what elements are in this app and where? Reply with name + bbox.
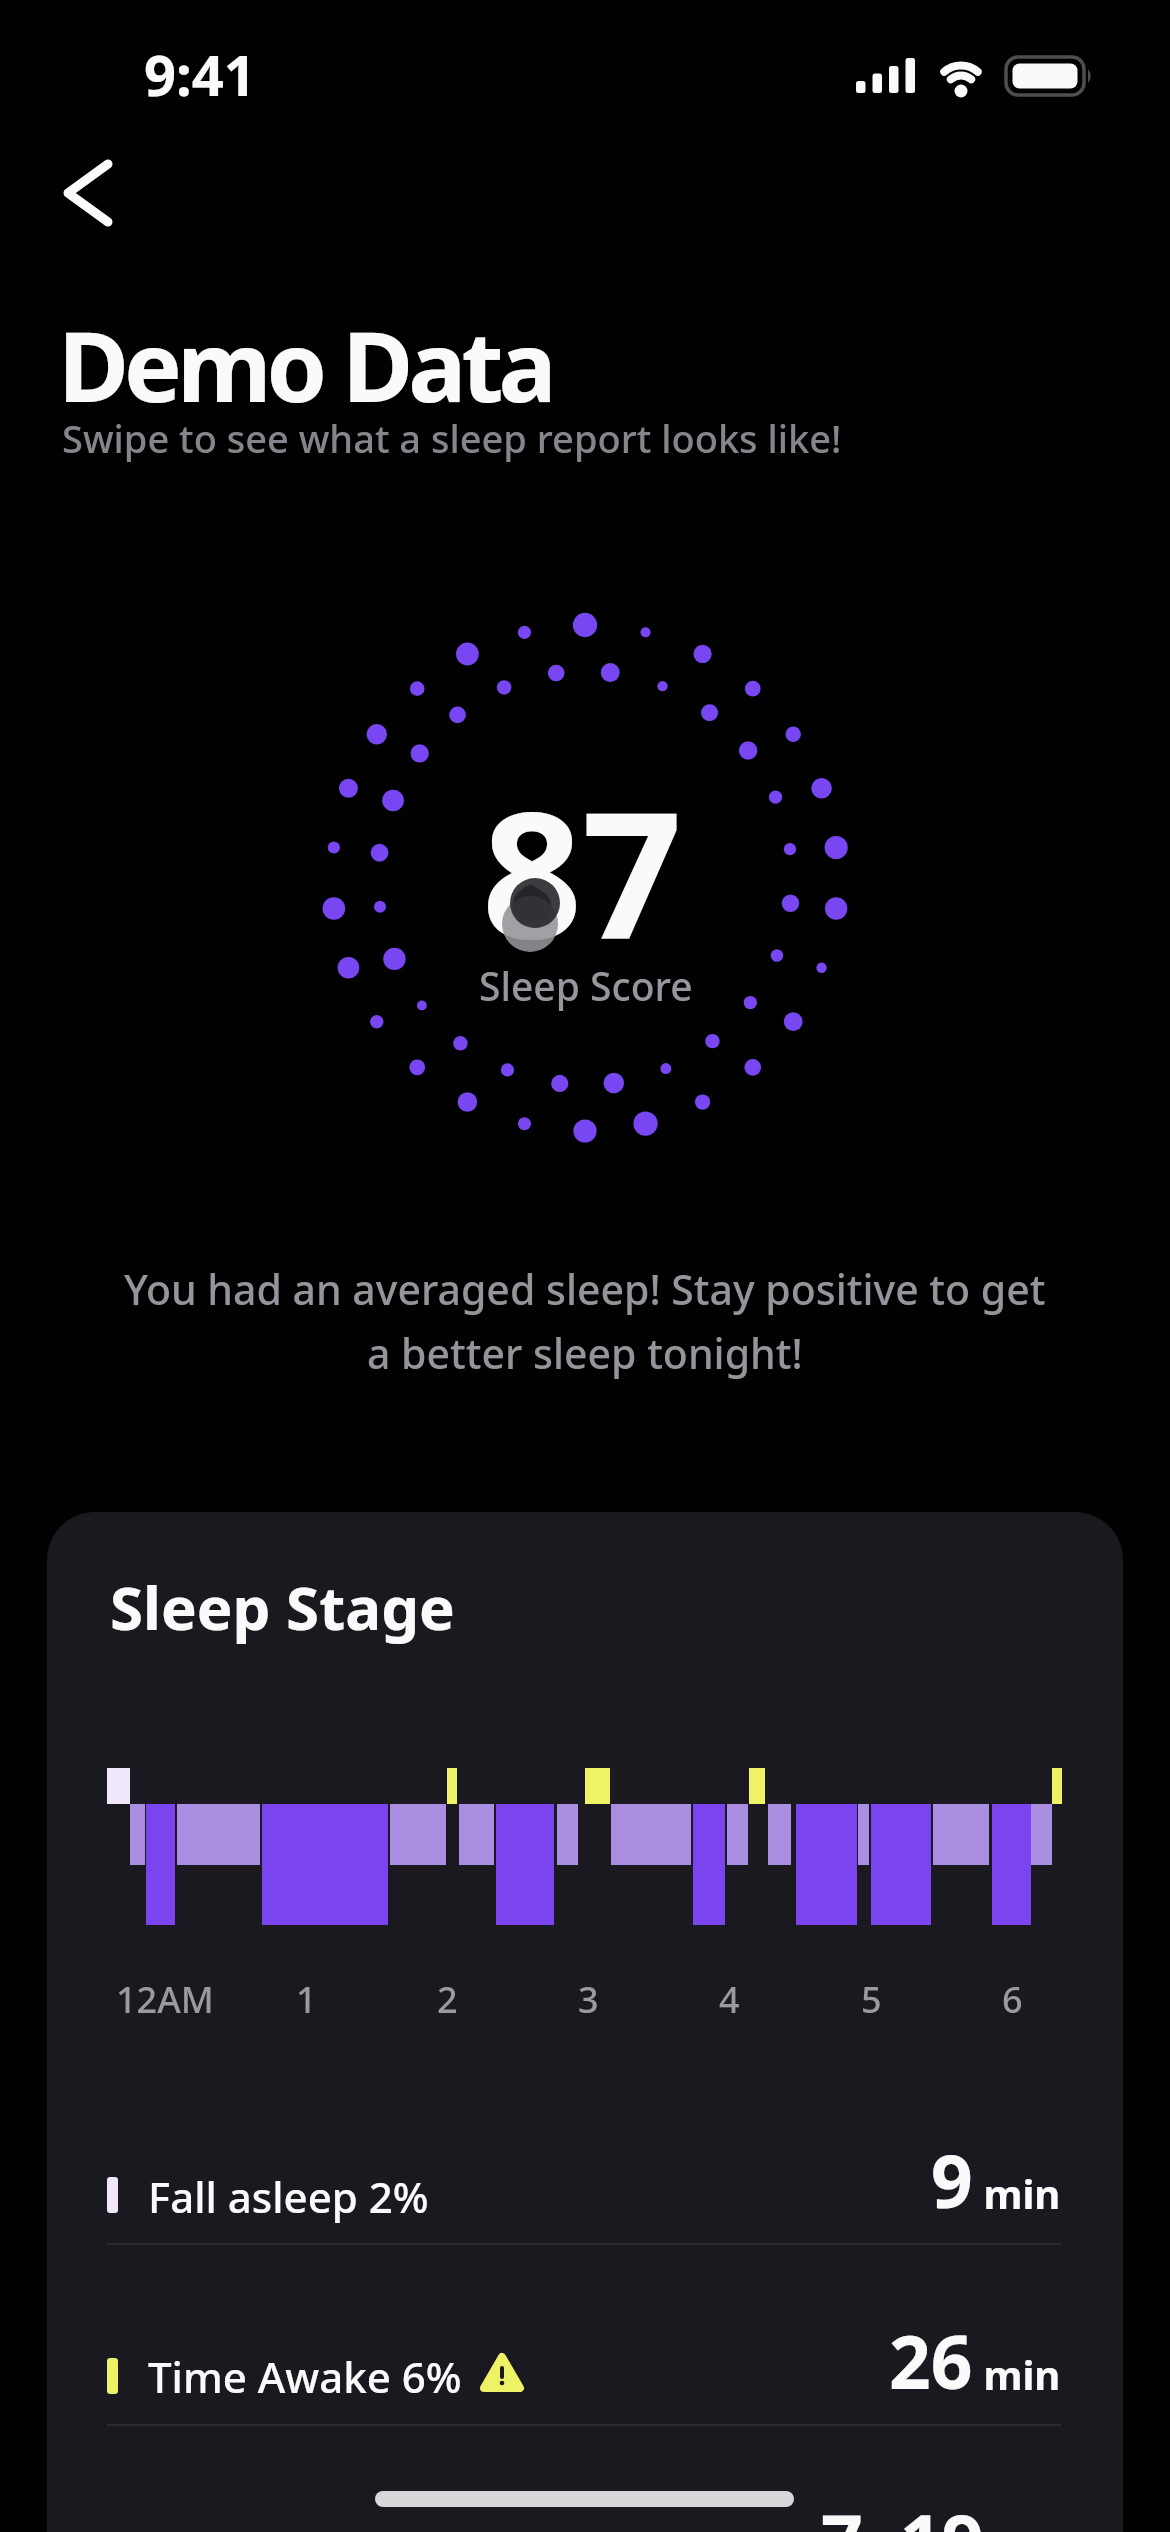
staticText: a better sleep tonight! <box>367 1325 803 1381</box>
staticText: 9:41 <box>144 36 256 112</box>
staticText: 4 <box>719 1975 740 2024</box>
staticText: 2 <box>437 1975 458 2024</box>
staticText: Sleep Score <box>479 959 693 1012</box>
staticText: 9 <box>931 2130 973 2229</box>
staticText: Fall asleep 2% <box>148 2168 429 2225</box>
staticText: 7 <box>821 2490 863 2532</box>
staticText: 19 <box>900 2490 984 2532</box>
staticText: 6 <box>1002 1975 1023 2024</box>
staticText: Time Awake 6% <box>148 2348 462 2405</box>
staticText: Sleep Stage <box>110 1566 455 1648</box>
staticText: Demo Data <box>58 298 552 430</box>
staticText: You had an averaged sleep! Stay positive… <box>124 1261 1046 1317</box>
staticText: min <box>973 2347 1061 2401</box>
staticText: 1 <box>296 1975 317 2024</box>
staticText: 26 <box>889 2311 973 2410</box>
staticText: 87 <box>482 751 683 989</box>
staticText: Swipe to see what a sleep report looks l… <box>62 412 842 464</box>
staticText: 5 <box>861 1975 882 2024</box>
staticText: min <box>973 2166 1061 2220</box>
button[interactable] <box>50 150 140 240</box>
staticText: 12AM <box>116 1975 214 2024</box>
staticText: 3 <box>578 1975 599 2024</box>
